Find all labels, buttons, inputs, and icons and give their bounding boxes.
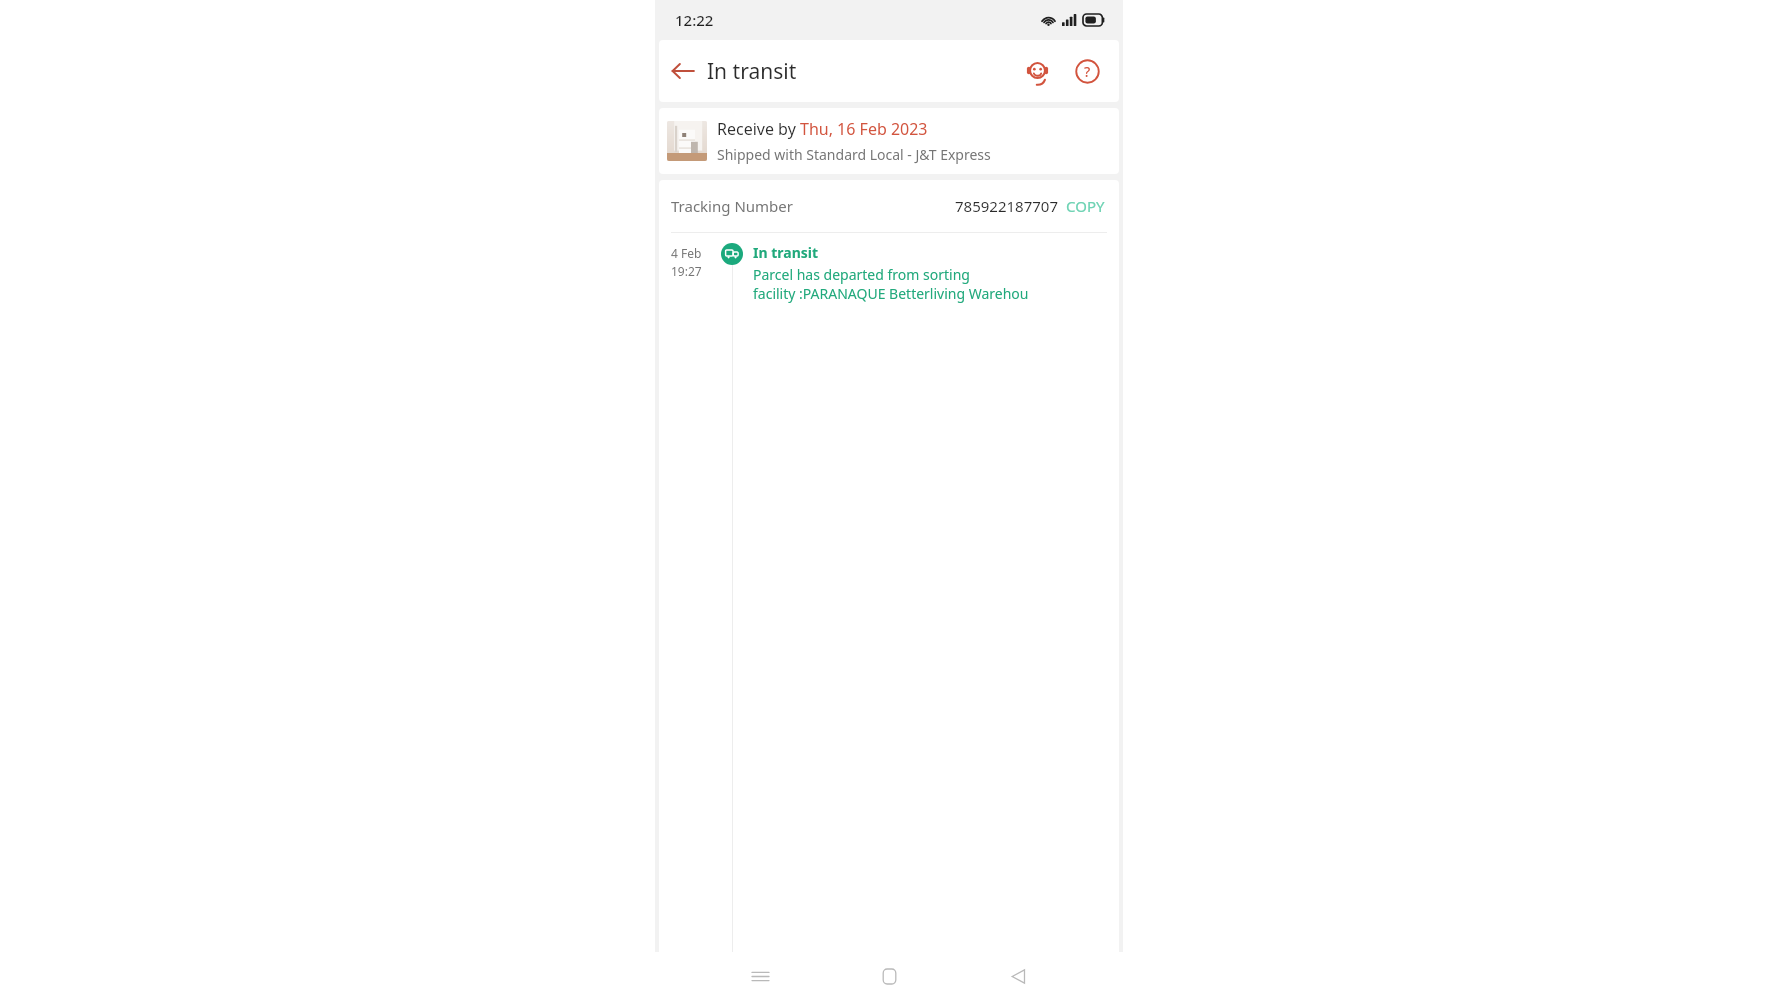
staticText: 4 Feb [671, 245, 702, 261]
button[interactable]: 4 Feb [659, 243, 1119, 1000]
button[interactable]: Customer service [1013, 47, 1061, 95]
button[interactable]: Back [994, 952, 1042, 1000]
staticText: 19:27 [671, 263, 702, 279]
staticText: In transit [753, 243, 819, 262]
staticText: Tracking Number [671, 196, 793, 216]
staticText: 12:22 [675, 10, 714, 30]
staticText: Receive by [717, 118, 800, 140]
button[interactable]: Home [865, 952, 913, 1000]
button[interactable]: Help [1063, 47, 1111, 95]
staticText: Thu, 16 Feb 2023 [800, 118, 928, 140]
button[interactable]: Recents [736, 952, 784, 1000]
staticText: COPY [1066, 196, 1105, 216]
button[interactable]: Receive by [659, 108, 1119, 174]
button[interactable]: COPY [1064, 192, 1107, 220]
staticText: 785922187707 [955, 196, 1058, 216]
staticText: In transit [707, 57, 797, 86]
button[interactable]: Back [659, 47, 707, 95]
staticText: Shipped with Standard Local - J&T Expres… [717, 145, 991, 164]
staticText: Parcel has departed from sorting facilit… [753, 265, 1105, 303]
staticText: ? [1084, 62, 1091, 81]
